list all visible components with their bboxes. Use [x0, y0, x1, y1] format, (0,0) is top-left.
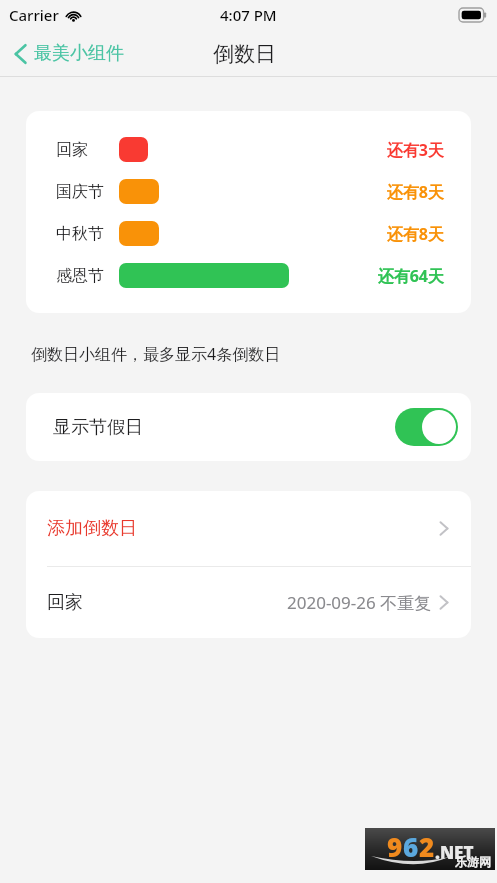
- staticText: Carrier: [9, 5, 59, 25]
- button[interactable]: 添加倒数日: [26, 491, 471, 566]
- staticText: 还有64天: [377, 265, 444, 287]
- staticText: 最美小组件: [34, 42, 124, 65]
- button[interactable]: 回家: [26, 111, 471, 313]
- staticText: 添加倒数日: [47, 517, 137, 540]
- staticText: 国庆节: [56, 182, 119, 202]
- staticText: 9: [387, 829, 403, 864]
- staticText: .NET: [435, 841, 474, 864]
- staticText: 还有3天: [386, 139, 444, 161]
- staticText: 还有8天: [386, 223, 444, 245]
- staticText: 倒数日小组件，最多显示4条倒数日: [31, 343, 281, 365]
- staticText: 感恩节: [56, 266, 119, 286]
- staticText: 中秋节: [56, 224, 119, 244]
- staticText: 2020-09-26 不重复: [287, 591, 432, 614]
- staticText: 6: [403, 829, 419, 864]
- button[interactable]: 回家: [26, 567, 471, 638]
- staticText: 回家: [47, 591, 83, 614]
- button[interactable]: 显示节假日开关: [395, 408, 458, 446]
- button[interactable]: 显示节假日: [26, 393, 471, 461]
- staticText: 还有8天: [386, 181, 444, 203]
- staticText: 回家: [56, 140, 119, 160]
- staticText: 2: [419, 829, 435, 864]
- staticText: 显示节假日: [53, 416, 143, 439]
- button[interactable]: 最美小组件: [0, 36, 134, 71]
- staticText: 倒数日: [213, 41, 276, 67]
- staticText: 4:07 PM: [220, 5, 277, 25]
- staticText: 乐游网: [455, 854, 491, 869]
